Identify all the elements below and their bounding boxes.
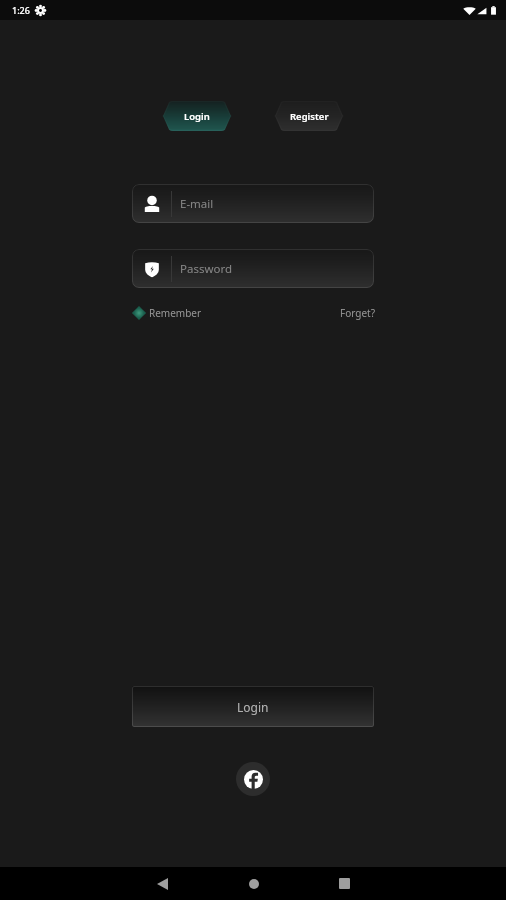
staticText: Login — [237, 699, 269, 715]
button[interactable]: Forget? — [340, 306, 376, 320]
button[interactable]: E-mail — [132, 184, 374, 223]
staticText: Register — [290, 110, 329, 123]
button[interactable]: Password — [132, 249, 374, 288]
staticText: 1:26 — [12, 4, 30, 16]
button[interactable]: Login — [132, 686, 374, 727]
staticText: Login — [184, 110, 210, 123]
staticText: Password — [180, 261, 233, 277]
staticText: Remember — [149, 306, 202, 320]
button[interactable]: Remember — [134, 306, 202, 320]
button[interactable]: Recent apps — [322, 867, 367, 900]
button[interactable]: Sign in with Facebook — [236, 762, 270, 796]
button[interactable]: Home — [231, 867, 276, 900]
staticText: E-mail — [180, 196, 214, 212]
button[interactable]: Register — [274, 101, 344, 131]
button[interactable]: Back — [140, 867, 185, 900]
button[interactable]: Login — [162, 101, 232, 131]
